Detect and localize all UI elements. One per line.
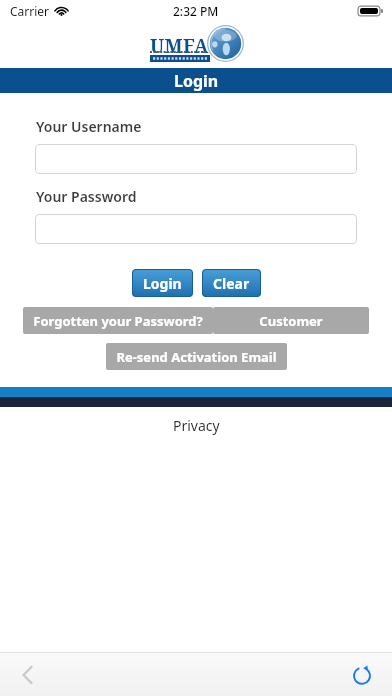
staticText: Your Password	[36, 187, 137, 206]
staticText: Login	[174, 70, 219, 92]
button[interactable]: Back	[8, 655, 48, 695]
button[interactable]: Forgotten your Password?	[23, 307, 213, 334]
button[interactable]: Reload	[342, 655, 382, 695]
button[interactable]: Clear	[202, 269, 261, 297]
staticText: Forgotten your Password?	[33, 312, 203, 330]
staticText: UMFA	[150, 33, 209, 59]
button[interactable]: Customer Registration	[213, 307, 369, 334]
staticText: Customer Registration	[223, 312, 359, 330]
staticText: Your Username	[36, 117, 142, 136]
staticText: Re-send Activation Email	[116, 348, 277, 366]
staticText: 2:32 PM	[173, 3, 219, 19]
button[interactable]	[35, 214, 357, 244]
staticText: Carrier	[10, 3, 50, 19]
staticText: Clear	[213, 274, 250, 293]
staticText: Login	[143, 274, 182, 293]
button[interactable]: Login	[132, 269, 193, 297]
button[interactable]: Privacy	[173, 416, 220, 435]
button[interactable]: Re-send Activation Email	[106, 343, 287, 370]
button[interactable]	[35, 144, 357, 174]
